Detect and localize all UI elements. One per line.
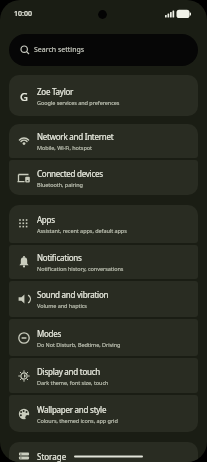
staticText: Zoe Taylor [37,86,74,97]
staticText: Notifications [37,252,82,263]
staticText: Mobile, Wi-Fi, hotspot [37,144,92,151]
staticText: G [20,89,28,104]
button[interactable]: Network and Internet [9,124,198,158]
staticText: Volume and haptics [37,302,87,309]
staticText: Wallpaper and style [37,404,107,415]
button[interactable]: G [9,75,198,116]
button[interactable]: Apps [9,205,198,243]
staticText: Assistant, recent apps, default apps [37,227,127,234]
staticText: Modes [37,328,62,339]
staticText: Do Not Disturb, Bedtime, Driving [37,341,121,348]
staticText: Google services and preferences [37,99,120,106]
staticText: Dark theme, font size, touch [37,379,109,386]
button[interactable]: Modes [9,319,198,356]
staticText: Bluetooth, pairing [37,181,83,188]
staticText: Network and Internet [37,131,114,142]
staticText: Colours, themed icons, app grid [37,417,118,424]
staticText: Sound and vibration [37,289,109,300]
staticText: Notification history, conversations [37,265,124,272]
button[interactable]: Wallpaper and style [9,395,198,432]
button[interactable]: Search settings [9,34,198,66]
button[interactable]: Connected devices [9,160,198,195]
staticText: 10:00 [14,9,32,19]
button[interactable]: Notifications [9,245,198,279]
staticText: Apps [37,214,55,225]
button[interactable]: Display and touch [9,358,198,393]
staticText: Search settings [34,45,85,55]
staticText: Storage [37,451,67,462]
button[interactable]: Storage [9,442,198,462]
staticText: Display and touch [37,366,101,377]
button[interactable]: Sound and vibration [9,281,198,317]
staticText: Connected devices [37,168,103,179]
